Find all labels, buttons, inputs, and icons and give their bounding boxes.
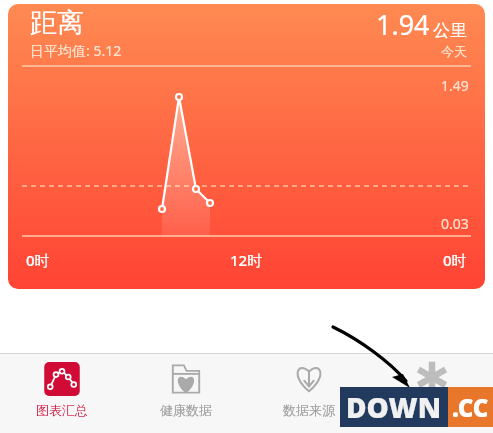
staticText: 0时 xyxy=(26,250,50,270)
staticText: 医疗急救 xyxy=(406,402,458,418)
staticText: 今天 xyxy=(441,43,467,59)
staticText: 0.03 xyxy=(441,214,469,233)
staticText: DOWN xyxy=(346,388,442,426)
staticText: 日平均值: 5.12 xyxy=(30,41,122,60)
button[interactable]: 距离 xyxy=(8,4,485,289)
staticText: 1.49 xyxy=(441,76,469,95)
other: 健康数据 xyxy=(166,362,206,396)
staticText: 距离 xyxy=(30,6,84,40)
button[interactable]: 健康数据 xyxy=(124,354,247,433)
staticText: 健康数据 xyxy=(160,402,212,418)
other: 图表汇总 xyxy=(38,362,86,396)
staticText: .CC xyxy=(452,391,489,424)
staticText: 数据来源 xyxy=(283,402,335,418)
button[interactable]: 数据来源 xyxy=(247,354,370,433)
other: 医疗急救 xyxy=(412,362,452,396)
staticText: 图表汇总 xyxy=(36,402,88,418)
staticText: 0时 xyxy=(443,250,467,270)
staticText: 1.94 xyxy=(376,6,430,43)
staticText: 公里 xyxy=(433,20,467,41)
button[interactable]: 医疗急救 xyxy=(370,354,493,433)
button[interactable]: 图表汇总 xyxy=(0,354,124,433)
staticText: 12时 xyxy=(230,250,263,270)
other: 数据来源 xyxy=(289,362,329,396)
